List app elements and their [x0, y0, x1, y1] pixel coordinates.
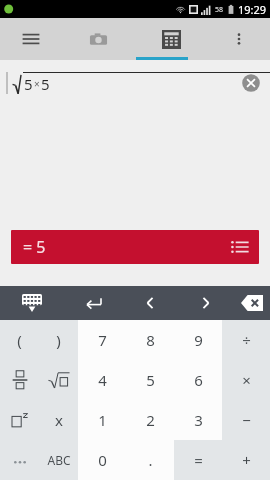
button[interactable]: More options [208, 18, 270, 60]
staticText: 19:29 [238, 2, 267, 17]
staticText: ÷ [242, 330, 251, 350]
button[interactable]: 9 [174, 320, 222, 360]
button[interactable]: 1 [78, 400, 126, 440]
staticText: ( [17, 330, 22, 350]
button[interactable]: Enter [64, 286, 122, 320]
button[interactable]: Menu [0, 18, 62, 60]
staticText: 0 [98, 450, 107, 470]
staticText: × [34, 77, 40, 91]
button[interactable]: Hide keyboard [0, 286, 64, 320]
button[interactable]: ( [0, 320, 39, 360]
button[interactable]: ) [39, 320, 78, 360]
staticText: + [242, 450, 251, 470]
button[interactable] [39, 360, 78, 400]
staticText: 9 [194, 330, 203, 350]
staticText: 7 [98, 330, 107, 350]
staticText: ABC [47, 452, 71, 468]
staticText: 1 [98, 410, 107, 430]
button[interactable]: 0 [78, 440, 126, 480]
button[interactable] [0, 360, 39, 400]
staticText: 3 [194, 410, 203, 430]
button[interactable]: 4 [78, 360, 126, 400]
button[interactable]: 5 [126, 360, 174, 400]
button[interactable]: . [126, 440, 174, 480]
staticText: 2 [146, 410, 155, 430]
staticText: 5 [41, 74, 50, 94]
button[interactable]: Backspace [234, 286, 270, 320]
staticText: = [194, 450, 203, 470]
button[interactable]: 7 [78, 320, 126, 360]
button[interactable] [0, 400, 39, 440]
staticText: 8 [146, 330, 155, 350]
button[interactable] [0, 440, 39, 480]
button[interactable]: Move left [122, 286, 178, 320]
button[interactable]: 8 [126, 320, 174, 360]
button[interactable]: = 5 [11, 230, 259, 264]
staticText: . [148, 450, 153, 470]
button[interactable]: − [222, 400, 270, 440]
staticText: 5 [146, 370, 155, 390]
staticText: 6 [194, 370, 203, 390]
button[interactable]: Move right [178, 286, 234, 320]
button[interactable]: × [222, 360, 270, 400]
staticText: 4 [98, 370, 107, 390]
button[interactable]: 2 [126, 400, 174, 440]
button[interactable]: ÷ [222, 320, 270, 360]
staticText: × [242, 370, 251, 390]
staticText: x [55, 410, 63, 430]
button[interactable]: Calculator [135, 18, 208, 60]
staticText: 58 [215, 5, 224, 15]
button[interactable]: 3 [174, 400, 222, 440]
button[interactable]: + [222, 440, 270, 480]
staticText: ) [56, 330, 61, 350]
staticText: = 5 [23, 236, 46, 258]
button[interactable]: Clear [240, 72, 262, 94]
button[interactable]: 6 [174, 360, 222, 400]
button[interactable]: = [174, 440, 222, 480]
button[interactable]: x [39, 400, 78, 440]
button[interactable]: Camera [62, 18, 135, 60]
staticText: 5 [24, 74, 33, 94]
button[interactable]: ABC [39, 440, 78, 480]
staticText: − [242, 410, 251, 430]
button[interactable]: History [231, 238, 249, 256]
